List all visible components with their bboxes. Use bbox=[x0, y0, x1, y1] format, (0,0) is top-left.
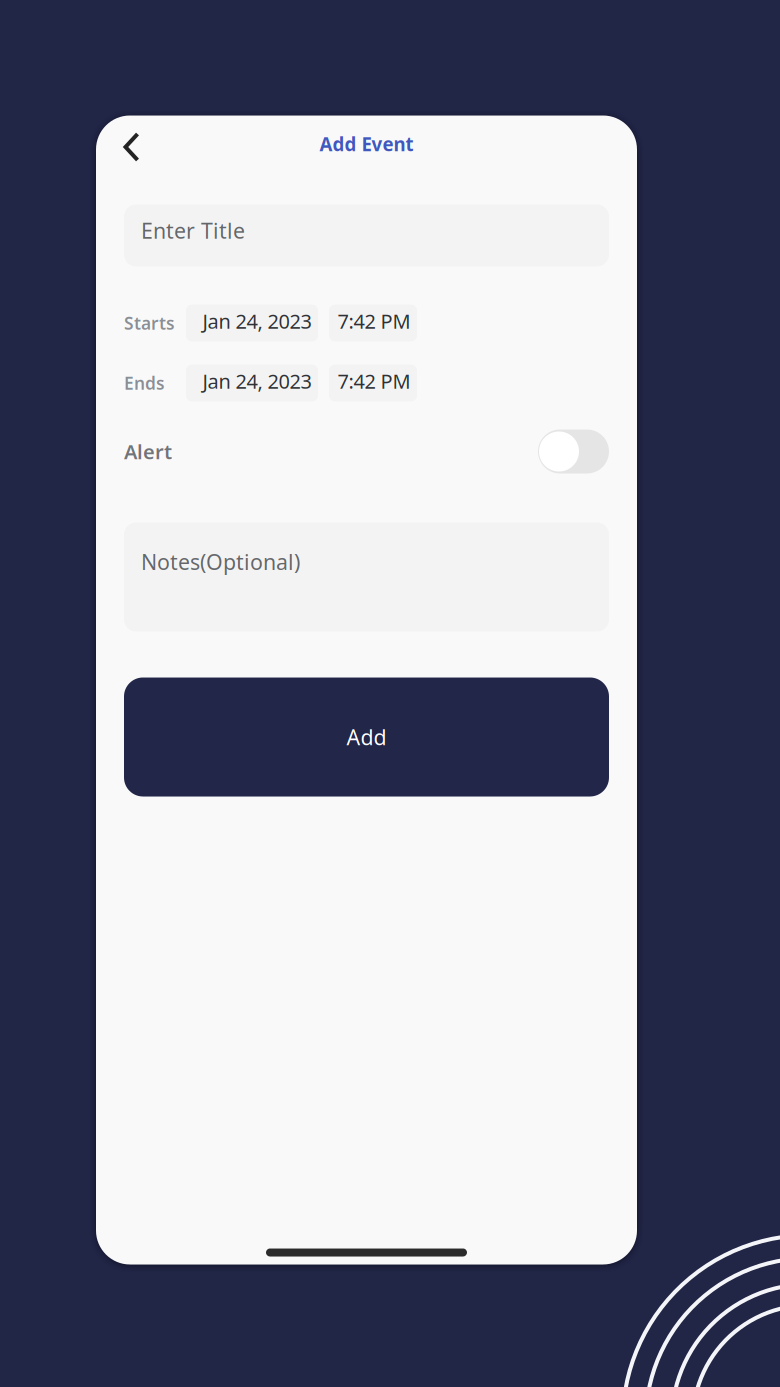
staticText: Notes(Optional) bbox=[141, 547, 300, 576]
staticText: Jan 24, 2023 bbox=[202, 368, 311, 394]
button[interactable]: 7:42 PM bbox=[329, 364, 417, 401]
staticText: Ends bbox=[124, 371, 165, 394]
staticText: Jan 24, 2023 bbox=[202, 308, 311, 334]
button[interactable]: 7:42 PM bbox=[329, 304, 417, 341]
staticText: Add Event bbox=[319, 131, 413, 156]
staticText: Enter Title bbox=[141, 216, 245, 245]
staticText: Starts bbox=[124, 311, 175, 334]
staticText: 7:42 PM bbox=[337, 368, 410, 394]
button[interactable]: Notes(Optional) bbox=[124, 522, 609, 631]
staticText: 7:42 PM bbox=[337, 308, 410, 334]
button[interactable]: Enter Title bbox=[124, 204, 609, 266]
staticText: Add bbox=[346, 723, 386, 751]
button[interactable]: Back bbox=[108, 118, 155, 175]
button[interactable]: Jan 24, 2023 bbox=[186, 304, 318, 341]
button[interactable]: Alert bbox=[538, 429, 609, 473]
button[interactable]: Jan 24, 2023 bbox=[186, 364, 318, 401]
staticText: Alert bbox=[124, 438, 172, 465]
button[interactable]: Add bbox=[124, 677, 609, 796]
